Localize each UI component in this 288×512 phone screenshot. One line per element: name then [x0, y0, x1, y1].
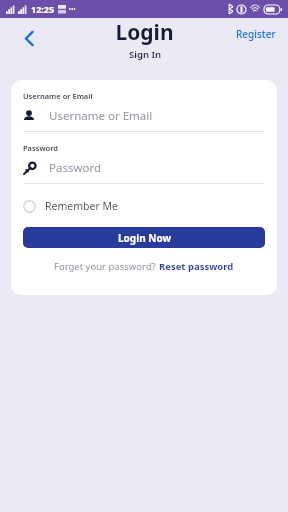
staticText: Password: [49, 160, 102, 176]
staticText: Forget your password?: [54, 260, 159, 273]
button[interactable]: Login Now: [23, 227, 265, 248]
button[interactable]: Username or Email: [23, 108, 265, 124]
button[interactable]: Remember Me: [23, 197, 118, 215]
button[interactable]: Register: [232, 24, 280, 44]
button[interactable]: Back: [14, 23, 44, 53]
staticText: 12:25: [31, 3, 55, 15]
staticText: Username or Email: [23, 91, 93, 101]
button[interactable]: Reset password: [159, 260, 234, 273]
staticText: Register: [236, 27, 276, 41]
staticText: Reset password: [159, 260, 234, 273]
staticText: Password: [23, 143, 59, 153]
staticText: Login Now: [118, 231, 171, 245]
staticText: Sign In: [129, 48, 161, 61]
button[interactable]: Password: [23, 160, 265, 176]
staticText: Remember Me: [45, 199, 118, 213]
staticText: Username or Email: [49, 108, 153, 124]
staticText: Login: [115, 18, 174, 47]
